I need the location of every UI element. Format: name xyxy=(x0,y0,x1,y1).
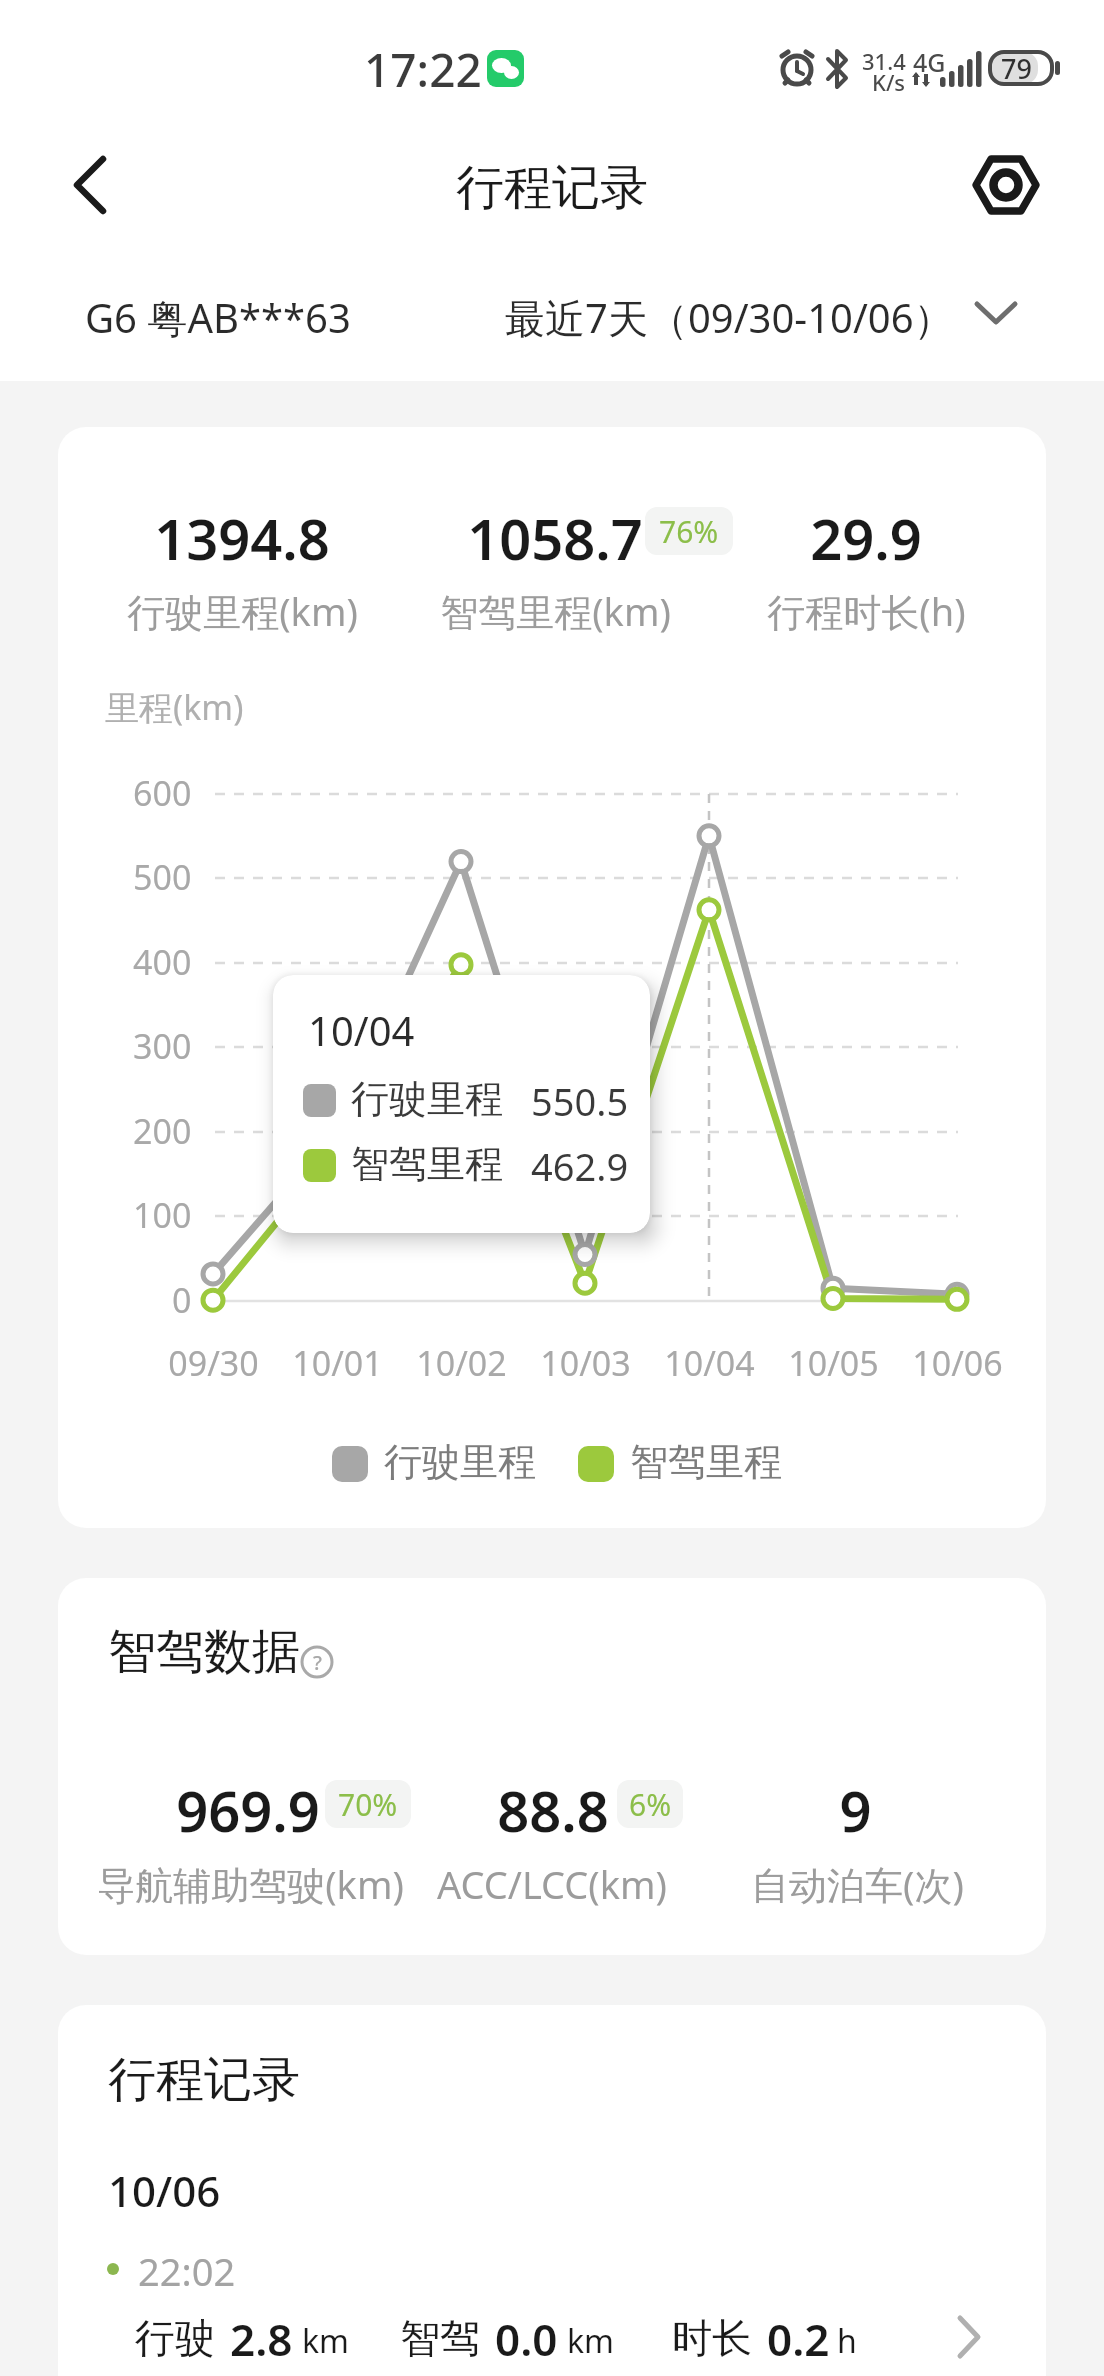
staticText: 9 xyxy=(839,1772,872,1848)
staticText: 10/05 xyxy=(788,1340,879,1386)
staticText: 0.0 xyxy=(495,2309,558,2369)
staticText: 智驾里程(km) xyxy=(440,585,671,637)
staticText: 22:02 xyxy=(138,2245,236,2297)
staticText: 1394.8 xyxy=(154,500,330,576)
staticText: 里程(km) xyxy=(105,684,244,730)
staticText: 0.2 xyxy=(767,2309,830,2369)
staticText: 17:22 xyxy=(364,38,482,101)
staticText: 0 xyxy=(172,1277,192,1323)
staticText: 500 xyxy=(133,854,192,900)
staticText: ? xyxy=(313,1649,322,1676)
button[interactable] xyxy=(60,155,120,215)
staticText: 31.4 xyxy=(862,46,906,76)
staticText: 行驶里程 xyxy=(384,1438,536,1486)
staticText: 智驾里程 xyxy=(351,1140,503,1188)
staticText: 70% xyxy=(338,1784,398,1825)
staticText: 300 xyxy=(133,1023,192,1069)
staticText: G6 粤AB***63 xyxy=(85,290,351,345)
staticText: 200 xyxy=(133,1108,192,1154)
staticText: h xyxy=(837,2319,857,2363)
staticText: 10/04 xyxy=(664,1340,755,1386)
staticText: 智驾里程 xyxy=(630,1438,782,1486)
staticText: 行驶里程 xyxy=(351,1075,503,1123)
staticText: 智驾 xyxy=(400,2313,480,2363)
staticText: 智驾数据 xyxy=(108,1622,300,1682)
staticText: ACC/LCC(km) xyxy=(437,1858,667,1910)
staticText: 10/04 xyxy=(308,1003,415,1057)
staticText: 100 xyxy=(133,1192,192,1238)
staticText: 10/02 xyxy=(416,1340,507,1386)
button[interactable]: G6 粤AB***63 xyxy=(60,280,420,350)
staticText: 10/06 xyxy=(912,1340,1003,1386)
staticText: 时长 xyxy=(672,2313,752,2363)
staticText: 969.9 xyxy=(176,1772,320,1848)
staticText: 10/06 xyxy=(108,2162,221,2219)
staticText: 行驶里程(km) xyxy=(127,585,358,637)
staticText: 29.9 xyxy=(810,500,922,576)
button[interactable]: 22:02 xyxy=(58,2230,1046,2376)
staticText: km xyxy=(302,2319,350,2363)
button[interactable]: 最近7天（09/30-10/06） xyxy=(480,280,1040,350)
staticText: 462.9 xyxy=(531,1140,629,1192)
staticText: 88.8 xyxy=(497,1772,609,1848)
staticText: 最近7天（09/30-10/06） xyxy=(505,290,954,345)
staticText: 2.8 xyxy=(230,2309,293,2369)
staticText: 600 xyxy=(133,770,192,816)
button[interactable] xyxy=(971,150,1041,220)
staticText: 10/01 xyxy=(292,1340,383,1386)
staticText: 1058.7 xyxy=(467,500,643,576)
staticText: 4G xyxy=(913,45,946,79)
staticText: 400 xyxy=(133,939,192,985)
staticText: 550.5 xyxy=(531,1075,629,1127)
staticText: 09/30 xyxy=(168,1340,259,1386)
staticText: 行程记录 xyxy=(456,158,648,218)
staticText: 76% xyxy=(659,511,719,552)
staticText: K/s xyxy=(872,67,906,97)
staticText: 行程时长(h) xyxy=(767,585,966,637)
staticText: 行程记录 xyxy=(108,2050,300,2110)
staticText: 79 xyxy=(1001,50,1032,87)
staticText: 6% xyxy=(629,1784,672,1825)
staticText: 自动泊车(次) xyxy=(751,1858,964,1910)
staticText: 导航辅助驾驶(km) xyxy=(97,1858,404,1910)
staticText: 10/03 xyxy=(540,1340,631,1386)
staticText: 行驶 xyxy=(135,2313,215,2363)
staticText: km xyxy=(567,2319,615,2363)
